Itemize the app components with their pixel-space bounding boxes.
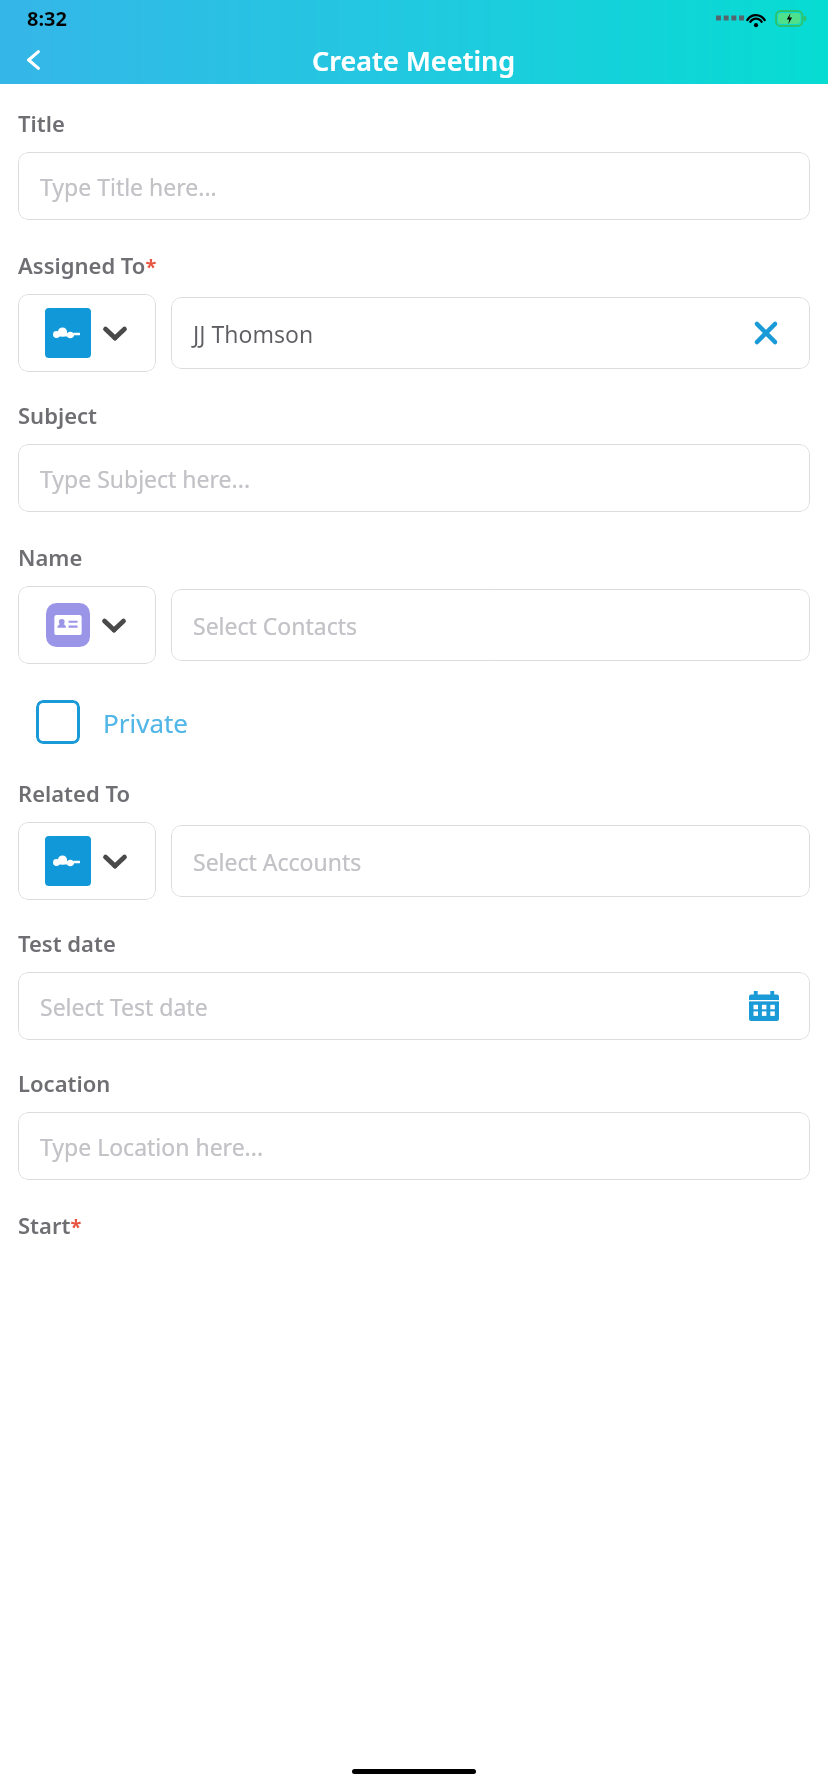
button[interactable]: Type Title here... [18,152,810,220]
button[interactable]: Select contact type [18,586,156,664]
button[interactable]: Select related type [18,822,156,900]
staticText: Assigned To* [18,250,157,280]
button[interactable]: JJ Thomson [171,297,810,369]
staticText: Name [18,542,83,572]
staticText: Type Subject here... [40,463,251,494]
staticText: Test date [18,928,116,958]
button[interactable]: Type Location here... [18,1112,810,1180]
staticText: Create Meeting [312,42,516,79]
staticText: Select Test date [40,991,208,1022]
button[interactable]: Select assignee type [18,294,156,372]
button[interactable]: Pick date [740,982,788,1030]
staticText: Type Location here... [40,1131,264,1162]
button[interactable]: Select Accounts [171,825,810,897]
button[interactable]: Clear [744,311,788,355]
staticText: Select Accounts [193,846,362,877]
staticText: JJ Thomson [193,318,314,349]
staticText: Select Contacts [193,610,358,641]
staticText: Subject [18,400,97,430]
staticText: Location [18,1068,111,1098]
button[interactable]: Back [10,36,58,84]
staticText: Start* [18,1210,82,1240]
button[interactable]: Select Contacts [171,589,810,661]
staticText: Related To [18,778,130,808]
button[interactable]: Private [18,694,189,750]
button[interactable]: Type Subject here... [18,444,810,512]
button[interactable]: Select Test date [18,972,810,1040]
staticText: Type Title here... [40,171,217,202]
staticText: 8:32 [27,5,67,32]
staticText: Title [18,108,65,138]
staticText: Private [103,705,189,740]
